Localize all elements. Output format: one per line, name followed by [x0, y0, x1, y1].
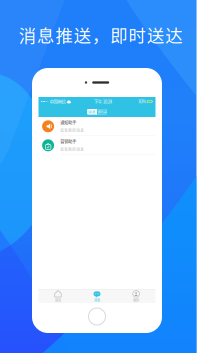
staticText: 下午 10:24 — [94, 98, 112, 105]
button[interactable]: 营销助手 — [38, 136, 155, 155]
staticText: 中国电信 — [49, 98, 65, 105]
staticText: 消息 — [94, 298, 100, 302]
button[interactable]: 通知助手 — [38, 117, 155, 136]
button[interactable]: 消息 — [87, 109, 97, 114]
button[interactable]: 首页 — [38, 289, 77, 303]
button[interactable]: 通讯录 — [97, 109, 107, 114]
staticText: 通讯录 — [97, 109, 106, 114]
button[interactable]: 消息 — [77, 289, 116, 303]
staticText: 营销助手 — [60, 139, 76, 145]
staticText: 83% — [138, 98, 146, 104]
staticText: 通知助手 — [60, 120, 76, 126]
staticText: 首页 — [55, 298, 61, 302]
staticText: 消息 — [88, 109, 96, 115]
button[interactable]: 我的 — [116, 289, 155, 303]
staticText: 我的 — [133, 298, 139, 302]
staticText: 您有新的消息 — [60, 128, 84, 133]
staticText: 您有新的消息 — [60, 147, 84, 152]
staticText: 消息推送，即时送达 — [19, 22, 182, 47]
